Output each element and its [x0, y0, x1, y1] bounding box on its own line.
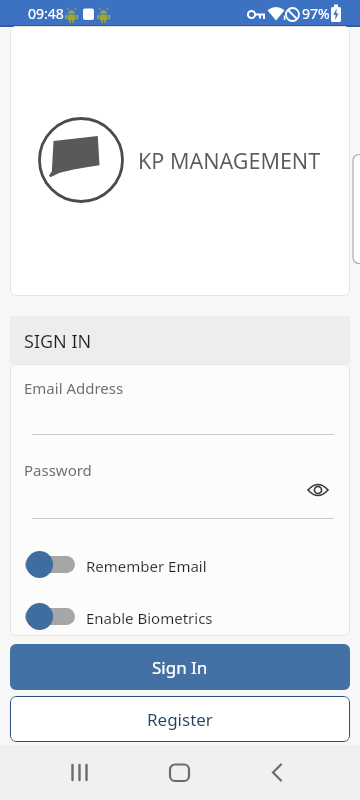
button[interactable] [307, 481, 329, 499]
button[interactable]: Sign In [10, 644, 350, 690]
button[interactable] [25, 551, 265, 578]
staticText: Password [24, 460, 92, 480]
button[interactable]: Email Address [24, 372, 336, 436]
staticText: 97% [302, 4, 330, 23]
staticText: KP MANAGEMENT [138, 146, 321, 175]
button[interactable] [252, 748, 302, 798]
staticText: Register [147, 708, 213, 731]
staticText: Sign In [152, 656, 208, 679]
button[interactable] [155, 748, 205, 798]
button[interactable] [56, 748, 106, 798]
button[interactable]: Register [10, 696, 350, 742]
staticText: Email Address [24, 378, 124, 398]
staticText: Enable Biometrics [86, 608, 213, 628]
staticText: SIGN IN [24, 329, 92, 354]
button[interactable]: Password [24, 454, 296, 518]
staticText: Remember Email [86, 556, 207, 576]
button[interactable] [25, 603, 265, 630]
staticText: 09:48 [28, 4, 64, 23]
